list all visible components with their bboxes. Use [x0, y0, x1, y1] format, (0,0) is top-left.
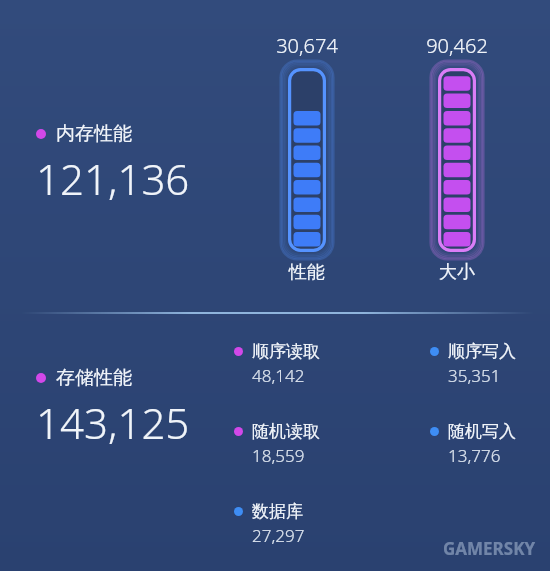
staticText: 48,142 [252, 364, 305, 387]
button[interactable]: 存储性能 [36, 366, 190, 451]
staticText: 存储性能 [56, 366, 132, 390]
staticText: 顺序写入 [448, 341, 516, 362]
staticText: 性能 [261, 261, 353, 284]
button[interactable]: 顺序写入 [430, 341, 516, 387]
staticText: 13,776 [448, 444, 501, 467]
button[interactable]: 大小 90,462 [411, 32, 503, 284]
staticText: 内存性能 [56, 122, 132, 146]
staticText: 143,125 [36, 394, 190, 451]
button[interactable]: 数据库 [234, 501, 303, 547]
button[interactable]: 内存性能 [36, 122, 190, 207]
button[interactable]: 性能 30,674 [261, 32, 353, 284]
staticText: 随机读取 [252, 421, 320, 442]
staticText: 27,297 [252, 524, 305, 547]
staticText: 顺序读取 [252, 341, 320, 362]
button[interactable]: 随机写入 [430, 421, 516, 467]
staticText: GAMERSKY [443, 537, 536, 560]
staticText: 30,674 [261, 32, 353, 59]
staticText: 18,559 [252, 444, 305, 467]
staticText: 随机写入 [448, 421, 516, 442]
button[interactable]: 顺序读取 [234, 341, 320, 387]
staticText: 121,136 [36, 150, 190, 207]
staticText: 90,462 [411, 32, 503, 59]
staticText: 35,351 [448, 364, 501, 387]
staticText: 数据库 [252, 501, 303, 522]
staticText: 大小 [411, 261, 503, 284]
button[interactable]: 随机读取 [234, 421, 320, 467]
